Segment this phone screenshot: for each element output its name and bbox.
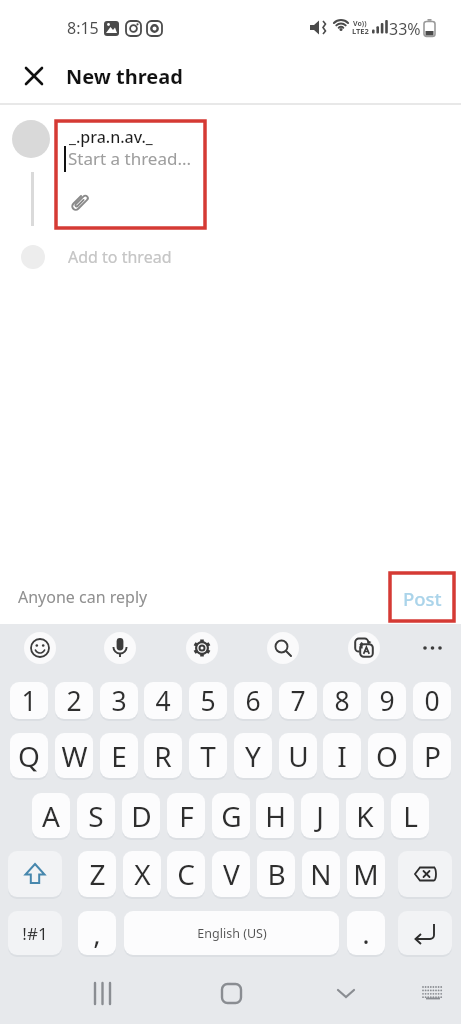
button[interactable] [419, 634, 447, 662]
staticText: _.pra.n.av._ [69, 126, 153, 148]
staticText: English (US) [197, 925, 267, 942]
button[interactable] [85, 975, 121, 1011]
button[interactable]: 8 [323, 682, 361, 719]
button[interactable]: M [347, 851, 385, 897]
button[interactable] [68, 146, 188, 172]
staticText: R [154, 737, 172, 775]
staticText: M [353, 855, 379, 893]
staticText: 8 [334, 683, 350, 719]
staticText: , [93, 914, 101, 952]
button[interactable]: A [32, 793, 70, 838]
button[interactable]: P [413, 733, 451, 778]
button[interactable]: W [55, 733, 93, 778]
button[interactable]: I [323, 733, 361, 778]
staticText: . [362, 914, 370, 952]
staticText: Y [245, 737, 261, 775]
button[interactable]: 6 [234, 682, 272, 719]
staticText: V [223, 855, 240, 893]
button[interactable]: Q [10, 733, 48, 778]
staticText: L [403, 797, 418, 835]
button[interactable]: 0 [413, 682, 451, 719]
button[interactable]: E [100, 733, 138, 778]
button[interactable]: 9 [368, 682, 406, 719]
button[interactable]: V [212, 851, 250, 897]
staticText: B [267, 855, 286, 893]
staticText: !#1 [22, 922, 48, 945]
button[interactable]: F [167, 793, 205, 838]
staticText: 6 [245, 683, 261, 719]
staticText: Z [89, 855, 106, 893]
staticText: I [337, 737, 347, 775]
button[interactable] [398, 911, 452, 955]
staticText: G [221, 797, 242, 835]
button[interactable] [348, 632, 380, 664]
button[interactable]: English (US) [124, 911, 339, 955]
staticText: Add to thread [68, 246, 172, 268]
staticText: F [179, 797, 194, 835]
button[interactable] [66, 188, 94, 216]
staticText: K [356, 797, 374, 835]
button[interactable] [398, 851, 452, 897]
button[interactable]: R [144, 733, 182, 778]
button[interactable]: Y [234, 733, 272, 778]
button[interactable] [413, 975, 449, 1011]
staticText: New thread [66, 63, 183, 90]
staticText: 8:15 [67, 17, 99, 39]
staticText: 1 [21, 683, 37, 719]
button[interactable]: S [77, 793, 115, 838]
button[interactable]: 2 [55, 682, 93, 719]
button[interactable]: B [257, 851, 295, 897]
staticText: A [42, 797, 60, 835]
staticText: C [177, 855, 195, 893]
staticText: U [288, 737, 309, 775]
button[interactable]: N [302, 851, 340, 897]
button[interactable]: Post [396, 580, 448, 616]
button[interactable]: X [123, 851, 161, 897]
button[interactable] [186, 632, 218, 664]
staticText: S [88, 797, 104, 835]
staticText: W [61, 737, 88, 775]
button[interactable]: U [279, 733, 317, 778]
staticText: LTE2 [352, 26, 369, 36]
staticText: D [131, 797, 152, 835]
button[interactable] [20, 62, 48, 90]
button[interactable]: 5 [189, 682, 227, 719]
staticText: 2 [66, 683, 82, 719]
staticText: X [134, 855, 151, 893]
button[interactable]: !#1 [8, 911, 62, 955]
button[interactable]: K [346, 793, 384, 838]
button[interactable] [14, 584, 174, 610]
button[interactable]: L [391, 793, 429, 838]
button[interactable]: T [189, 733, 227, 778]
button[interactable] [213, 975, 249, 1011]
button[interactable] [24, 632, 56, 664]
button[interactable] [8, 851, 62, 897]
button[interactable]: C [167, 851, 205, 897]
staticText: O [376, 737, 398, 775]
staticText: 3 [111, 683, 127, 719]
button[interactable]: Z [78, 851, 116, 897]
staticText: Post [403, 586, 442, 611]
staticText: Anyone can reply [18, 586, 148, 608]
button[interactable] [104, 632, 136, 664]
button[interactable]: 7 [279, 682, 317, 719]
button[interactable]: 1 [10, 682, 48, 719]
button[interactable] [328, 975, 364, 1011]
staticText: N [310, 855, 332, 893]
button[interactable]: D [122, 793, 160, 838]
button[interactable]: 3 [100, 682, 138, 719]
button[interactable]: J [301, 793, 339, 838]
staticText: 5 [200, 683, 216, 719]
staticText: 7 [290, 683, 306, 719]
staticText: 0 [424, 683, 440, 719]
button[interactable]: H [256, 793, 294, 838]
button[interactable]: . [347, 911, 385, 955]
staticText: Q [18, 737, 40, 775]
button[interactable]: , [78, 911, 116, 955]
staticText: Vo)) [353, 19, 367, 29]
button[interactable]: 4 [144, 682, 182, 719]
button[interactable]: G [212, 793, 250, 838]
button[interactable] [267, 632, 299, 664]
staticText: T [200, 737, 216, 775]
button[interactable]: O [368, 733, 406, 778]
